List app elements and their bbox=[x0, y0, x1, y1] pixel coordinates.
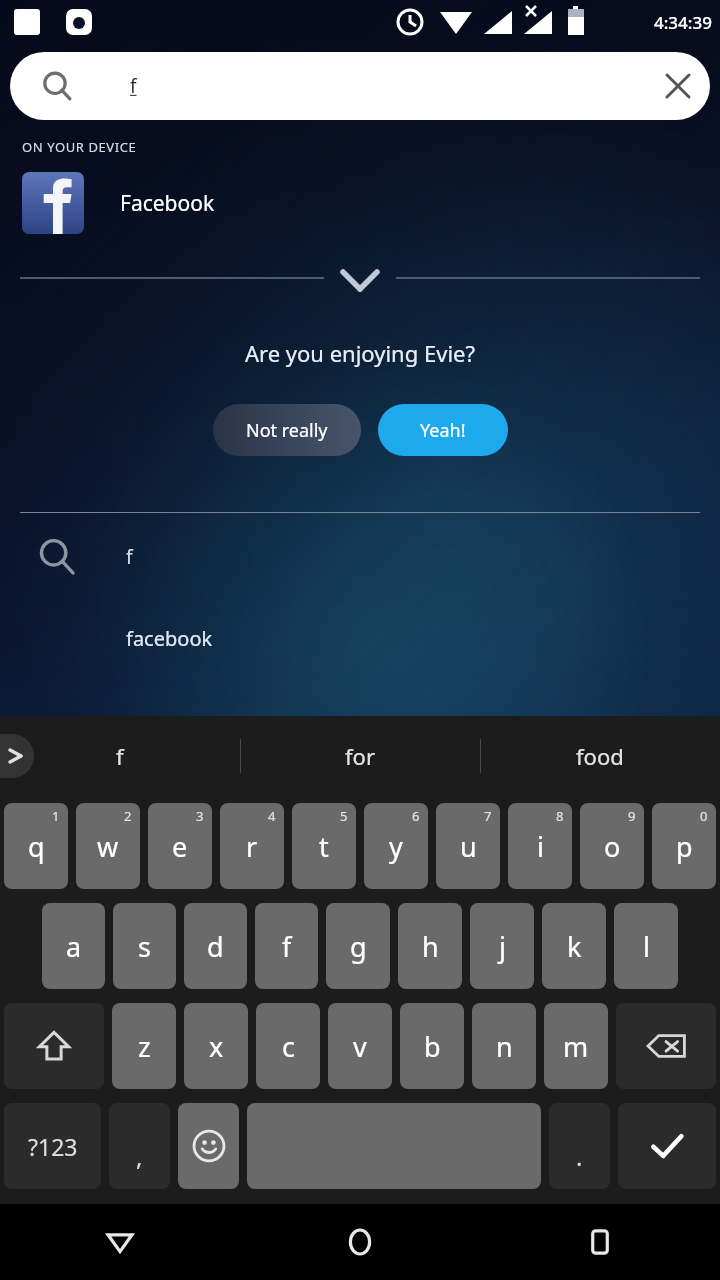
staticText: 0 bbox=[700, 807, 708, 825]
staticText: . bbox=[576, 1140, 583, 1173]
button[interactable]: More suggestions bbox=[0, 734, 34, 778]
button[interactable]: Enter bbox=[618, 1103, 716, 1189]
button[interactable]: l bbox=[614, 903, 678, 989]
staticText: , bbox=[136, 1140, 143, 1173]
button[interactable]: b bbox=[400, 1003, 464, 1089]
staticText: f bbox=[126, 544, 133, 570]
staticText: f bbox=[282, 928, 292, 965]
staticText: 4 bbox=[268, 807, 276, 825]
staticText: 6 bbox=[412, 807, 420, 825]
staticText: 5 bbox=[340, 807, 348, 825]
button[interactable]: e bbox=[148, 803, 212, 889]
button[interactable]: r bbox=[220, 803, 284, 889]
button[interactable]: facebook bbox=[0, 601, 720, 675]
staticText: ON YOUR DEVICE bbox=[22, 138, 137, 156]
button[interactable]: n bbox=[472, 1003, 536, 1089]
button[interactable]: Shift bbox=[4, 1003, 104, 1089]
button[interactable]: v bbox=[328, 1003, 392, 1089]
staticText: l bbox=[643, 928, 650, 965]
button[interactable]: c bbox=[256, 1003, 320, 1089]
button[interactable]: j bbox=[470, 903, 534, 989]
staticText: i bbox=[537, 828, 544, 865]
staticText: j bbox=[499, 928, 506, 965]
button[interactable]: g bbox=[326, 903, 390, 989]
staticText: 8 bbox=[556, 807, 564, 825]
staticText: y bbox=[389, 828, 403, 865]
button[interactable]: k bbox=[542, 903, 606, 989]
staticText: e bbox=[172, 828, 188, 865]
button[interactable]: Facebook bbox=[0, 168, 720, 238]
staticText: 4:34:39 bbox=[654, 11, 712, 34]
button[interactable]: Clear search bbox=[646, 54, 710, 118]
button[interactable]: Not really bbox=[213, 404, 361, 456]
button[interactable]: . bbox=[549, 1103, 610, 1189]
staticText: u bbox=[460, 828, 477, 865]
button[interactable]: f bbox=[0, 716, 240, 796]
button[interactable]: x bbox=[184, 1003, 248, 1089]
button[interactable]: q bbox=[4, 803, 68, 889]
button[interactable]: u bbox=[436, 803, 500, 889]
staticText: 7 bbox=[484, 807, 492, 825]
staticText: f bbox=[116, 741, 124, 771]
button[interactable]: p bbox=[652, 803, 716, 889]
button[interactable]: o bbox=[580, 803, 644, 889]
staticText: Not really bbox=[246, 418, 328, 443]
button[interactable]: ?123 bbox=[4, 1103, 101, 1189]
staticText: s bbox=[138, 928, 151, 965]
staticText: c bbox=[282, 1028, 295, 1065]
staticText: w bbox=[97, 828, 119, 865]
button[interactable]: Expand bbox=[315, 260, 405, 300]
staticText: b bbox=[424, 1028, 441, 1065]
button[interactable]: w bbox=[76, 803, 140, 889]
staticText: Are you enjoying Evie? bbox=[245, 338, 476, 368]
button[interactable]: f bbox=[255, 903, 318, 989]
staticText: 1 bbox=[52, 807, 60, 825]
button[interactable]: food bbox=[480, 716, 720, 796]
button[interactable]: f bbox=[10, 52, 710, 120]
button[interactable]: m bbox=[544, 1003, 608, 1089]
staticText: Yeah! bbox=[420, 418, 466, 443]
staticText: for bbox=[345, 741, 375, 771]
button[interactable]: Back bbox=[0, 1204, 240, 1280]
staticText: ?123 bbox=[28, 1131, 78, 1162]
staticText: food bbox=[576, 741, 624, 771]
button[interactable]: i bbox=[508, 803, 572, 889]
button[interactable]: z bbox=[112, 1003, 176, 1089]
staticText: m bbox=[563, 1028, 589, 1065]
button[interactable]: Recents bbox=[480, 1204, 720, 1280]
button[interactable]: Yeah! bbox=[378, 404, 508, 456]
staticText: 3 bbox=[196, 807, 204, 825]
button[interactable]: Emoji bbox=[178, 1103, 239, 1189]
button[interactable]: s bbox=[113, 903, 176, 989]
button[interactable]: f bbox=[0, 513, 720, 601]
staticText: g bbox=[350, 928, 367, 965]
staticText: facebook bbox=[126, 625, 213, 652]
button[interactable]: d bbox=[184, 903, 247, 989]
staticText: d bbox=[207, 928, 224, 965]
staticText: n bbox=[496, 1028, 513, 1065]
button[interactable]: a bbox=[42, 903, 105, 989]
staticText: z bbox=[138, 1028, 151, 1065]
staticText: k bbox=[567, 928, 582, 965]
button[interactable]: , bbox=[109, 1103, 170, 1189]
staticText: h bbox=[422, 928, 439, 965]
staticText: v bbox=[353, 1028, 367, 1065]
staticText: q bbox=[28, 828, 45, 865]
button[interactable]: t bbox=[292, 803, 356, 889]
staticText: p bbox=[676, 828, 693, 865]
staticText: 9 bbox=[628, 807, 636, 825]
button[interactable]: Space bbox=[247, 1103, 541, 1189]
button[interactable]: Home bbox=[240, 1204, 480, 1280]
staticText: t bbox=[319, 828, 329, 865]
button[interactable]: h bbox=[398, 903, 462, 989]
button[interactable]: y bbox=[364, 803, 428, 889]
staticText: x bbox=[209, 1028, 224, 1065]
button[interactable]: for bbox=[240, 716, 480, 796]
staticText: Facebook bbox=[120, 189, 215, 218]
staticText: f bbox=[130, 73, 137, 99]
staticText: a bbox=[66, 928, 82, 965]
staticText: r bbox=[246, 828, 258, 865]
staticText: o bbox=[604, 828, 621, 865]
staticText: 2 bbox=[124, 807, 132, 825]
button[interactable]: Backspace bbox=[616, 1003, 716, 1089]
